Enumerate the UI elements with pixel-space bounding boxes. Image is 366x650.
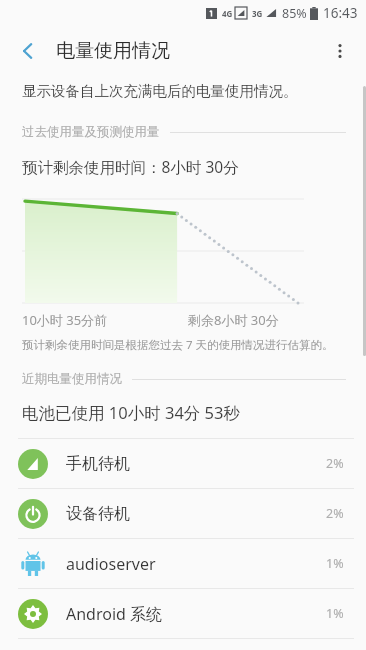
- staticText: 剩余8小时 30分: [188, 311, 279, 329]
- staticText: 预计剩余使用时间：8小时 30分: [22, 156, 239, 177]
- staticText: 85%: [282, 5, 307, 22]
- staticText: 预计剩余使用时间是根据您过去 7 天的使用情况进行估算的。: [22, 337, 334, 353]
- staticText: 显示设备自上次充满电后的电量使用情况。: [22, 82, 298, 100]
- staticText: 16:43: [323, 4, 358, 22]
- button[interactable]: 设备待机: [0, 489, 366, 538]
- staticText: 2%: [326, 455, 344, 472]
- button[interactable]: Back: [8, 31, 48, 71]
- staticText: 手机待机: [66, 454, 326, 474]
- staticText: audioserver: [66, 553, 326, 575]
- staticText: 设备待机: [66, 504, 326, 524]
- staticText: 1%: [326, 555, 344, 572]
- button[interactable]: audioserver: [0, 539, 366, 588]
- staticText: 2%: [326, 505, 344, 522]
- button[interactable]: Android 系统: [0, 589, 366, 638]
- staticText: 电量使用情况: [56, 39, 170, 63]
- button[interactable]: 手机待机: [0, 439, 366, 488]
- staticText: 3G: [252, 8, 263, 19]
- staticText: 4G: [222, 8, 233, 19]
- staticText: 10小时 35分前: [22, 311, 108, 329]
- staticText: Android 系统: [66, 603, 326, 625]
- staticText: 过去使用量及预测使用量: [22, 124, 160, 140]
- button[interactable]: More options: [320, 31, 360, 71]
- staticText: 1%: [326, 605, 344, 622]
- staticText: 近期电量使用情况: [22, 371, 122, 387]
- staticText: 电池已使用 10小时 34分 53秒: [22, 401, 240, 424]
